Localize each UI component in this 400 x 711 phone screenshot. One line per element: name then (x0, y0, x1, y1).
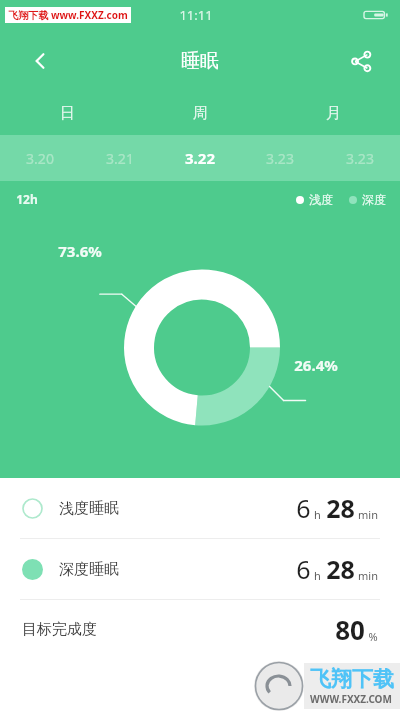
button[interactable]: 3.23 (240, 135, 320, 181)
button[interactable]: 3.22 (160, 135, 240, 181)
staticText: 浅度 (309, 192, 333, 207)
staticText: 73.6% (58, 241, 102, 261)
staticText: 飞翔下载 www.FXXZ.com (8, 8, 128, 22)
staticText: 浅度睡眠 (59, 499, 119, 518)
staticText: 80 (335, 612, 365, 647)
button[interactable]: 3.23 (320, 135, 400, 181)
staticText: h (314, 568, 321, 583)
staticText: 26.4% (294, 355, 338, 375)
button[interactable]: 周 (134, 92, 267, 135)
button[interactable]: 3.20 (0, 135, 80, 181)
staticText: 目标完成度 (22, 620, 97, 639)
staticText: 28 (326, 552, 355, 586)
button[interactable]: Share (340, 40, 382, 82)
staticText: % (368, 629, 378, 644)
staticText: 3.21 (106, 149, 134, 168)
staticText: WWW.FXXZ.COM (310, 692, 392, 706)
button[interactable]: 月 (267, 92, 400, 135)
staticText: min (358, 568, 378, 583)
button[interactable]: 浅度睡眠 (0, 478, 400, 538)
staticText: h (314, 507, 321, 522)
staticText: 深度睡眠 (59, 560, 119, 579)
staticText: 3.22 (185, 148, 215, 168)
staticText: 日 (60, 104, 75, 123)
staticText: 11:11 (179, 6, 213, 24)
staticText: 月 (326, 104, 341, 123)
staticText: 3.23 (346, 149, 374, 168)
staticText: 12h (16, 191, 38, 207)
button[interactable]: 目标完成度 (0, 600, 400, 658)
staticText: 3.23 (266, 149, 294, 168)
staticText: 睡眠 (181, 49, 219, 73)
staticText: 28 (326, 491, 355, 525)
staticText: min (358, 507, 378, 522)
button[interactable]: 日 (0, 92, 134, 135)
button[interactable]: Back (20, 40, 62, 82)
staticText: 周 (193, 104, 208, 123)
staticText: 6 (296, 552, 311, 586)
button[interactable]: 3.21 (80, 135, 160, 181)
staticText: 3.20 (26, 149, 54, 168)
button[interactable]: 深度睡眠 (0, 539, 400, 599)
staticText: 飞翔下载 (310, 666, 394, 692)
staticText: 深度 (362, 192, 386, 207)
staticText: 6 (296, 491, 311, 525)
